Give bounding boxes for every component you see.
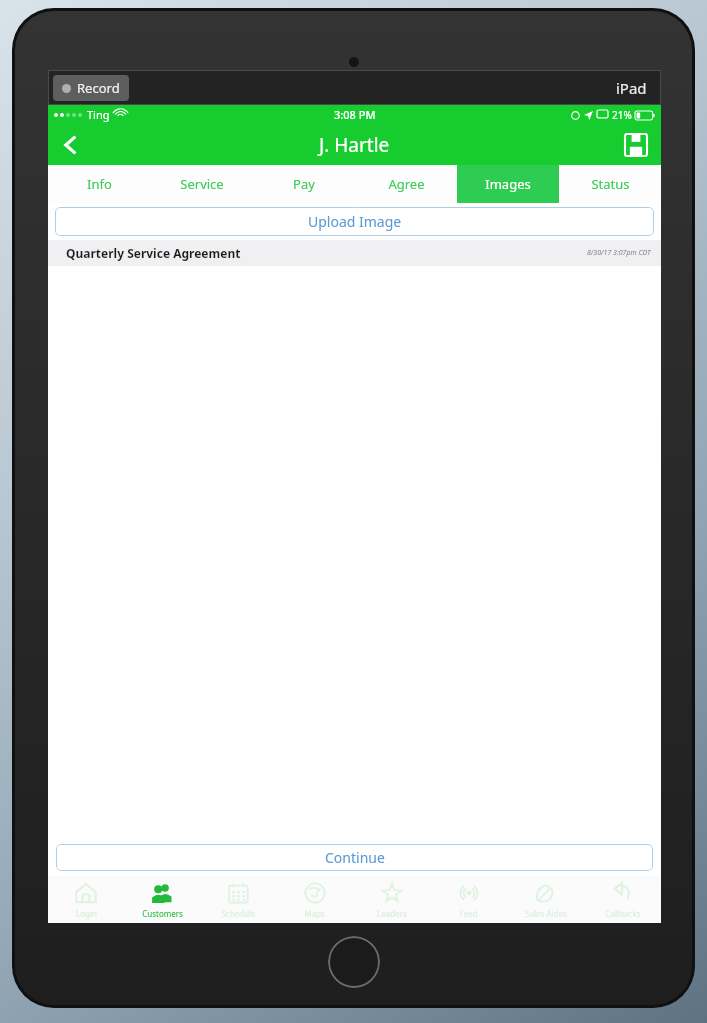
button[interactable]: Maps [276,876,353,923]
staticText: Status [591,175,630,193]
button[interactable]: Service [151,165,253,203]
button[interactable]: Sales Aides [507,876,584,923]
button[interactable]: Images [457,165,559,203]
staticText: 8/30/17 3:07pm CDT [587,248,651,258]
button[interactable]: Login [48,876,124,923]
staticText: 21% [612,108,632,122]
staticText: Callbacks [605,908,641,919]
staticText: Upload Image [308,212,402,231]
staticText: Service [180,175,224,193]
staticText: Feed [459,908,478,919]
button[interactable]: Record [53,75,129,101]
button[interactable]: Callbacks [584,876,661,923]
button[interactable]: Customers [124,876,200,923]
button[interactable]: Agree [355,165,457,203]
button[interactable]: Leaders [353,876,430,923]
button[interactable]: Back [48,124,94,165]
button[interactable]: Save [611,124,661,165]
staticText: Continue [325,848,385,867]
staticText: Record [77,79,120,97]
button[interactable]: Upload Image [55,207,654,236]
staticText: Schedule [221,908,256,919]
staticText: Quarterly Service Agreement [66,245,241,261]
button[interactable]: Schedule [200,876,276,923]
staticText: 3:08 PM [334,107,376,122]
staticText: Info [87,175,112,193]
staticText: Images [485,175,531,193]
button[interactable]: Info [48,165,151,203]
staticText: Agree [388,175,425,193]
button[interactable]: Continue [56,844,653,871]
staticText: J. Hartle [319,132,390,158]
button[interactable]: Feed [430,876,507,923]
button[interactable]: Status [559,165,661,203]
staticText: iPad [616,78,647,98]
staticText: Maps [304,908,325,919]
staticText: Sales Aides [525,908,567,919]
staticText: Customers [142,908,183,919]
staticText: Login [76,908,97,919]
staticText: Ting [87,107,110,122]
button[interactable]: Pay [253,165,355,203]
button[interactable]: Quarterly Service Agreement [48,240,661,266]
staticText: Leaders [377,908,407,919]
staticText: Pay [293,175,315,193]
